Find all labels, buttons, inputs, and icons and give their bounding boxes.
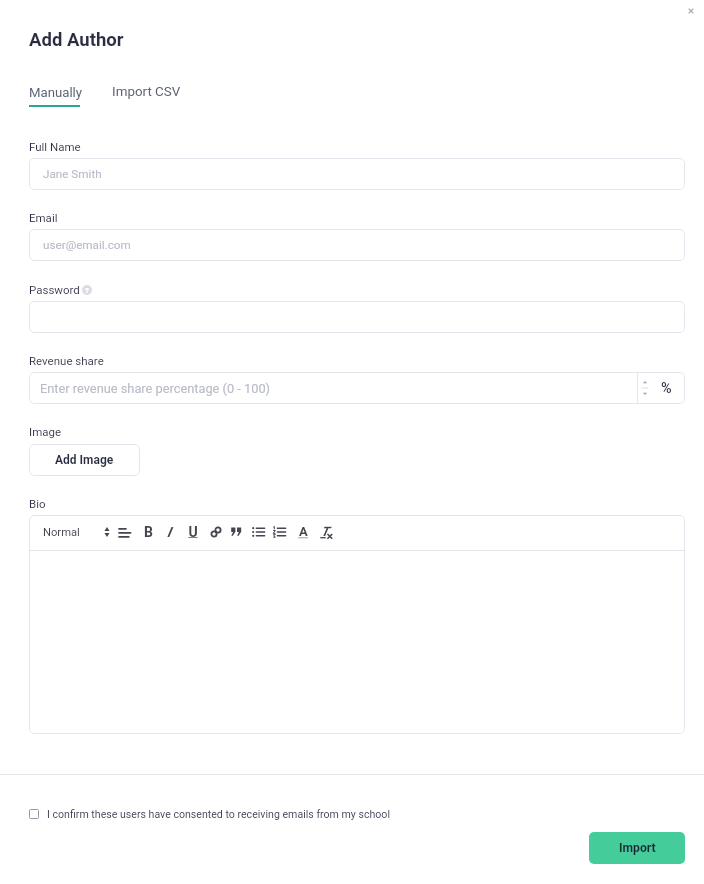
button[interactable]: Bold — [137, 521, 159, 543]
staticText: Import CSV — [112, 84, 181, 100]
button[interactable]: Clear formatting — [314, 521, 336, 543]
staticText: Add Author — [29, 29, 124, 51]
button[interactable]: Text colour — [292, 521, 314, 543]
button[interactable]: Link — [205, 521, 227, 543]
button[interactable]: I confirm these users have consented to … — [29, 805, 390, 823]
staticText: T — [321, 524, 329, 539]
button[interactable]: Text size — [96, 521, 118, 543]
button[interactable]: user@email.com — [29, 229, 685, 261]
staticText: Full Name — [29, 140, 81, 153]
button[interactable]: Import — [589, 832, 685, 864]
staticText: Bio — [29, 497, 46, 510]
staticText: % — [661, 380, 672, 397]
staticText: Manually — [29, 85, 83, 100]
button[interactable]: Password help — [82, 285, 92, 295]
button[interactable]: Enter revenue share percentage (0 - 100) — [29, 372, 637, 404]
staticText: ? — [85, 286, 89, 295]
button[interactable]: Bulleted list — [247, 521, 269, 543]
staticText: U — [188, 524, 198, 540]
button[interactable]: Alignment — [114, 521, 136, 543]
button[interactable]: Italic — [158, 521, 180, 543]
button[interactable]: Import CSV — [112, 81, 181, 103]
staticText: B — [144, 524, 153, 540]
staticText: Normal — [43, 526, 80, 539]
staticText: Enter revenue share percentage (0 - 100) — [40, 381, 271, 396]
staticText: I — [167, 524, 171, 540]
button[interactable]: Underline — [182, 521, 204, 543]
button[interactable]: Manually — [29, 81, 83, 103]
staticText: Add Image — [55, 453, 114, 467]
button[interactable]: Numbered list — [268, 521, 290, 543]
button[interactable] — [29, 301, 685, 333]
button[interactable]: Add Image — [29, 444, 140, 476]
staticText: user@email.com — [43, 238, 131, 252]
staticText: Revenue share — [29, 354, 104, 367]
button[interactable]: Quote — [226, 521, 248, 543]
staticText: A — [299, 524, 308, 539]
button[interactable]: Jane Smith — [29, 158, 685, 190]
button[interactable]: Close — [680, 0, 702, 22]
staticText: I confirm these users have consented to … — [47, 808, 390, 820]
button[interactable]: Increment or decrement — [638, 372, 651, 404]
staticText: Email — [29, 211, 58, 224]
staticText: Jane Smith — [43, 167, 102, 181]
staticText: Password — [29, 283, 80, 296]
staticText: Image — [29, 425, 62, 438]
staticText: Import — [619, 841, 656, 855]
